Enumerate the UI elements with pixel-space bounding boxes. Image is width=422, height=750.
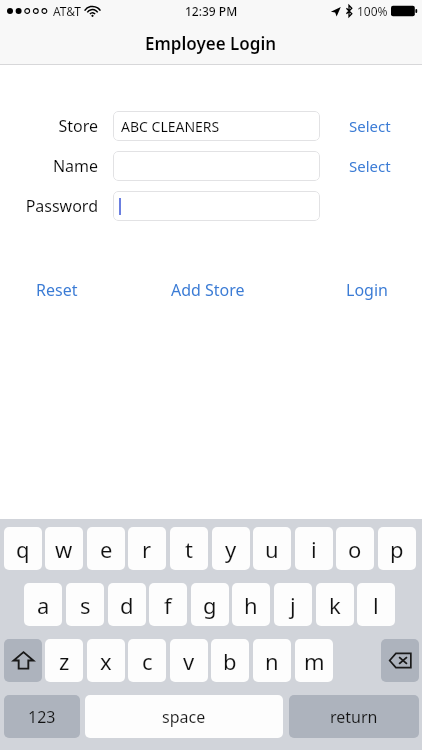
button[interactable]: w xyxy=(45,527,83,570)
staticText: b xyxy=(223,646,237,676)
staticText: Login xyxy=(346,279,388,301)
staticText: t xyxy=(185,534,193,564)
button[interactable]: Add Store xyxy=(165,275,251,305)
staticText: return xyxy=(330,706,378,728)
staticText: 100% xyxy=(357,3,388,19)
button[interactable]: l xyxy=(357,583,395,626)
staticText: m xyxy=(304,646,325,676)
button[interactable]: p xyxy=(378,527,416,570)
staticText: Reset xyxy=(36,279,78,301)
staticText: Employee Login xyxy=(145,32,277,55)
button[interactable]: o xyxy=(336,527,374,570)
staticText: y xyxy=(225,534,237,564)
button[interactable]: q xyxy=(4,527,42,570)
button[interactable]: e xyxy=(87,527,125,570)
button[interactable]: 123 xyxy=(4,695,80,738)
staticText: w xyxy=(55,534,73,564)
button[interactable]: space xyxy=(85,695,283,738)
button[interactable]: i xyxy=(295,527,333,570)
staticText: 12:39 PM xyxy=(185,3,238,19)
staticText: q xyxy=(16,534,30,564)
button[interactable]: s xyxy=(66,583,104,626)
staticText: k xyxy=(329,590,341,620)
staticText: s xyxy=(80,590,91,620)
staticText: Name xyxy=(52,155,98,177)
button[interactable]: Shift xyxy=(4,639,42,682)
button[interactable]: j xyxy=(274,583,312,626)
staticText: ABC CLEANERS xyxy=(121,117,220,136)
button[interactable]: d xyxy=(108,583,146,626)
staticText: j xyxy=(290,590,296,620)
staticText: AT&T xyxy=(53,3,81,19)
staticText: Select xyxy=(349,116,391,136)
staticText: Add Store xyxy=(171,279,245,301)
button[interactable]: ABC CLEANERS xyxy=(113,111,320,141)
button[interactable]: v xyxy=(170,639,208,682)
button[interactable]: return xyxy=(289,695,419,738)
button[interactable]: u xyxy=(253,527,291,570)
staticText: x xyxy=(100,646,112,676)
staticText: Select xyxy=(349,156,391,176)
button[interactable]: Login xyxy=(340,275,394,305)
staticText: g xyxy=(203,590,217,620)
button[interactable]: f xyxy=(149,583,187,626)
button[interactable]: z xyxy=(45,639,83,682)
staticText: z xyxy=(59,646,70,676)
staticText: l xyxy=(373,590,379,620)
button[interactable]: x xyxy=(87,639,125,682)
button[interactable]: b xyxy=(211,639,249,682)
staticText: c xyxy=(142,646,153,676)
staticText: e xyxy=(100,534,113,564)
staticText: p xyxy=(390,534,404,564)
staticText: a xyxy=(37,590,50,620)
button[interactable]: t xyxy=(170,527,208,570)
button[interactable]: g xyxy=(191,583,229,626)
button[interactable]: m xyxy=(295,639,333,682)
staticText: i xyxy=(311,534,317,564)
button[interactable]: Reset xyxy=(30,275,84,305)
button[interactable]: h xyxy=(232,583,270,626)
staticText: o xyxy=(348,534,362,564)
button[interactable] xyxy=(113,151,320,181)
button[interactable]: Select xyxy=(344,111,396,141)
button[interactable]: Select xyxy=(344,151,396,181)
staticText: r xyxy=(142,534,152,564)
staticText: space xyxy=(162,706,206,728)
button[interactable]: r xyxy=(128,527,166,570)
staticText: v xyxy=(183,646,195,676)
staticText: d xyxy=(120,590,134,620)
button[interactable] xyxy=(113,191,320,221)
button[interactable]: Backspace xyxy=(381,639,419,682)
staticText: u xyxy=(265,534,279,564)
staticText: f xyxy=(164,590,172,620)
staticText: n xyxy=(265,646,279,676)
button[interactable]: a xyxy=(24,583,62,626)
staticText: 123 xyxy=(28,706,56,728)
staticText: h xyxy=(244,590,258,620)
staticText: Password xyxy=(25,195,98,217)
button[interactable]: c xyxy=(128,639,166,682)
staticText: Store xyxy=(58,115,98,137)
button[interactable]: y xyxy=(212,527,250,570)
button[interactable]: n xyxy=(253,639,291,682)
button[interactable]: k xyxy=(316,583,354,626)
